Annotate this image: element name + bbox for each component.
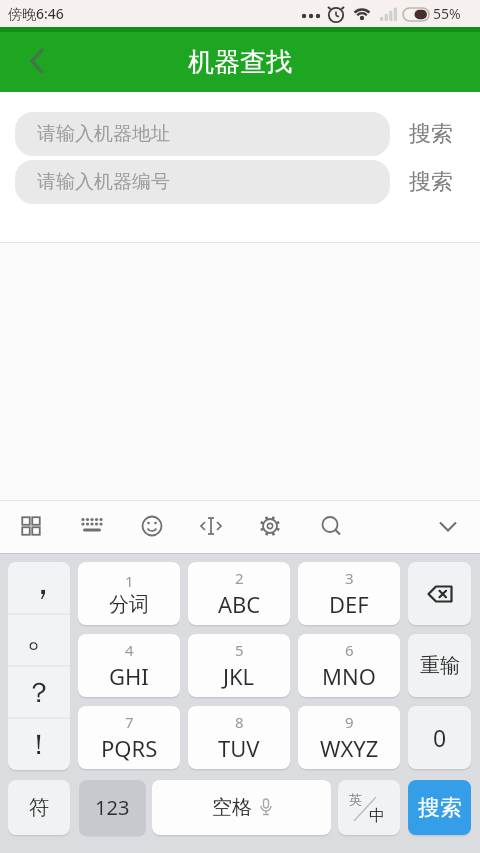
staticText: 3	[345, 568, 354, 588]
staticText: 中	[369, 806, 385, 826]
staticText: TUV	[218, 733, 260, 763]
staticText: 。	[26, 611, 62, 656]
button[interactable]: 重输	[408, 634, 471, 697]
button[interactable]: 8	[188, 706, 290, 769]
staticText: 4	[125, 640, 134, 660]
staticText: 请输入机器编号	[37, 170, 170, 194]
button[interactable]: 9	[298, 706, 400, 769]
button[interactable]: 5	[188, 634, 290, 697]
staticText: 6	[345, 640, 354, 660]
staticText: 8	[235, 712, 244, 732]
staticText: ？	[25, 675, 53, 710]
staticText: 机器查找	[188, 46, 292, 79]
staticText: ，	[25, 562, 61, 604]
button[interactable]	[342, 500, 411, 553]
staticText: ABC	[218, 589, 261, 619]
staticText: GHI	[109, 661, 149, 691]
staticText: DEF	[329, 589, 369, 619]
staticText: WXYZ	[320, 733, 379, 763]
button[interactable]	[232, 37, 276, 92]
button[interactable]: ，	[8, 562, 70, 770]
button[interactable]: 123	[79, 780, 146, 835]
button[interactable]: 搜索	[400, 160, 462, 204]
staticText: 英	[349, 791, 362, 807]
button[interactable]	[136, 500, 204, 553]
button[interactable]: ？	[8, 666, 70, 718]
staticText: 搜索	[418, 794, 462, 822]
button[interactable]	[68, 500, 136, 553]
staticText: 重输	[420, 653, 460, 678]
button[interactable]: 空格	[152, 780, 331, 835]
button[interactable]: 搜索	[408, 780, 471, 835]
button[interactable]: 2	[188, 562, 290, 625]
staticText: 2	[235, 568, 244, 588]
staticText: 空格	[212, 795, 252, 820]
staticText: 5	[235, 640, 244, 660]
button[interactable]	[273, 500, 342, 553]
button[interactable]: 0	[408, 706, 471, 769]
button[interactable]: 4	[78, 634, 180, 697]
button[interactable]: 。	[8, 614, 70, 666]
staticText: 55%	[433, 4, 461, 23]
button[interactable]: 请输入机器地址	[15, 112, 390, 156]
button[interactable]: 6	[298, 634, 400, 697]
button[interactable]: ！	[8, 718, 70, 770]
staticText: 符	[29, 795, 49, 820]
staticText: MNO	[322, 661, 376, 691]
staticText: 123	[95, 794, 130, 821]
button[interactable]: 符	[8, 780, 70, 835]
staticText: 搜索	[409, 120, 453, 148]
button[interactable]: 1	[78, 562, 180, 625]
button[interactable]	[408, 562, 471, 625]
staticText: 搜索	[409, 168, 453, 196]
staticText: 请输入机器地址	[37, 122, 170, 146]
staticText: PQRS	[101, 733, 158, 763]
button[interactable]	[0, 500, 68, 553]
staticText: 9	[345, 712, 354, 732]
button[interactable]	[204, 500, 273, 553]
button[interactable]	[411, 500, 480, 553]
staticText: 分词	[109, 592, 149, 617]
staticText: 傍晚6:46	[8, 4, 64, 23]
button[interactable]: 搜索	[400, 112, 462, 156]
staticText: 1	[125, 571, 134, 591]
button[interactable]: 请输入机器编号	[15, 160, 390, 204]
staticText: 7	[125, 712, 134, 732]
button[interactable]: 3	[298, 562, 400, 625]
staticText: JKL	[223, 661, 255, 691]
staticText: 0	[433, 722, 447, 753]
staticText: ！	[25, 727, 53, 762]
button[interactable]: 7	[78, 706, 180, 769]
button[interactable]: ，	[8, 562, 70, 614]
button[interactable]: 英	[338, 780, 400, 835]
